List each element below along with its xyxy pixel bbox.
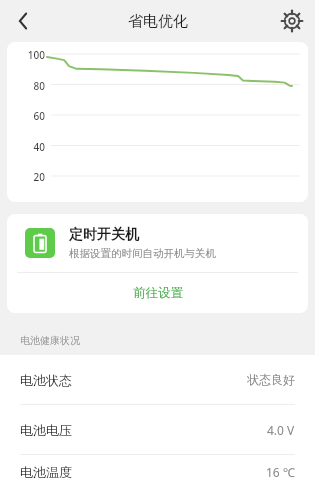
button[interactable]: 电池状态 bbox=[0, 355, 315, 405]
button[interactable]: 定时开关机 bbox=[7, 214, 308, 313]
staticText: 100 bbox=[7, 48, 45, 62]
staticText: 4.0 V bbox=[267, 422, 295, 438]
staticText: 80 bbox=[7, 79, 45, 93]
button[interactable]: 电池温度 bbox=[0, 455, 315, 489]
button[interactable]: Back bbox=[6, 4, 40, 38]
button[interactable]: 前往设置 bbox=[7, 273, 308, 313]
button[interactable]: Settings bbox=[275, 4, 309, 38]
staticText: 电池温度 bbox=[20, 464, 72, 480]
staticText: 60 bbox=[7, 109, 45, 123]
staticText: 前往设置 bbox=[133, 285, 183, 301]
staticText: 16 ℃ bbox=[266, 464, 295, 480]
staticText: 20 bbox=[7, 170, 45, 184]
staticText: 根据设置的时间自动开机与关机 bbox=[69, 247, 216, 260]
staticText: 省电优化 bbox=[128, 12, 188, 31]
staticText: 电池电压 bbox=[20, 422, 72, 438]
staticText: 电池状态 bbox=[20, 372, 72, 388]
staticText: 状态良好 bbox=[247, 372, 295, 387]
button[interactable]: 电池电压 bbox=[0, 405, 315, 455]
staticText: 40 bbox=[7, 140, 45, 154]
staticText: 定时开关机 bbox=[69, 226, 139, 244]
staticText: 电池健康状况 bbox=[20, 334, 80, 347]
